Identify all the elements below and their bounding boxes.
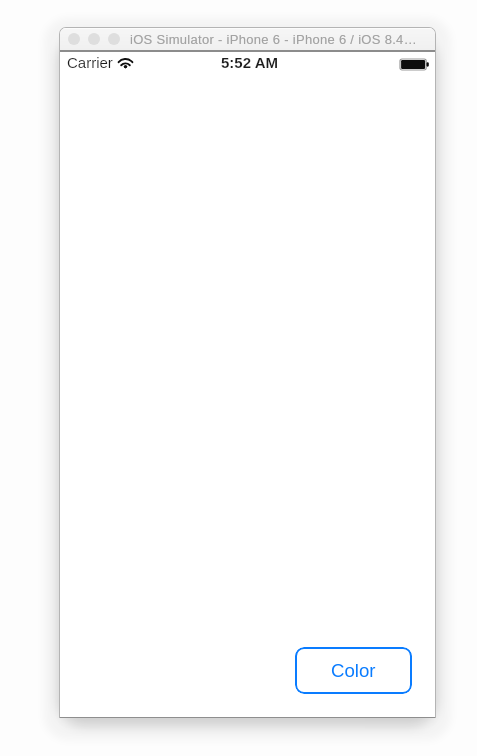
staticText: Carrier xyxy=(67,54,113,71)
staticText: Color xyxy=(331,660,376,681)
button[interactable]: Close window xyxy=(68,33,80,45)
button[interactable]: Zoom window xyxy=(108,33,120,45)
button[interactable]: Minimise window xyxy=(88,33,100,45)
staticText: 5:52 AM xyxy=(221,54,278,71)
button[interactable]: Color xyxy=(295,647,412,694)
staticText: iOS Simulator - iPhone 6 - iPhone 6 / iO… xyxy=(130,32,417,47)
